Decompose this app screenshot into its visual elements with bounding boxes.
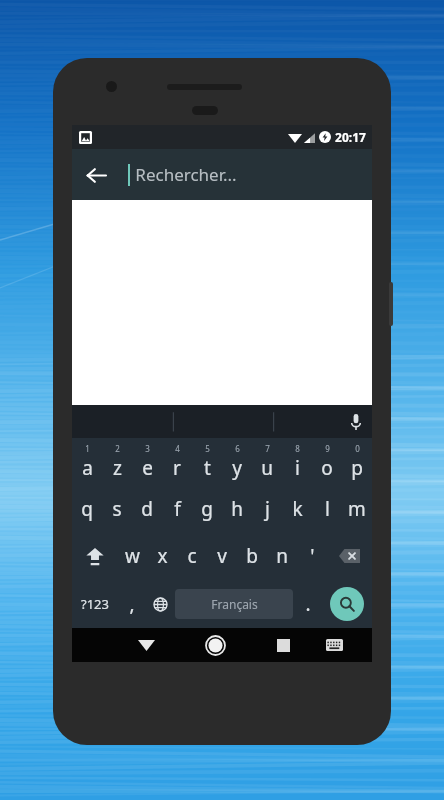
button[interactable]: Change language: [146, 580, 175, 628]
staticText: Rechercher...: [135, 163, 237, 186]
button[interactable]: f: [162, 485, 192, 532]
button[interactable]: s: [102, 485, 132, 532]
button[interactable]: 5: [192, 438, 222, 485]
staticText: Français: [211, 596, 258, 612]
button[interactable]: l: [312, 485, 342, 532]
button[interactable]: Backspace: [327, 532, 372, 580]
staticText: ?123: [81, 595, 109, 613]
button[interactable]: Rechercher...: [128, 149, 372, 200]
button[interactable]: n: [267, 532, 297, 580]
staticText: f: [174, 496, 181, 522]
button[interactable]: Shift: [72, 532, 117, 580]
staticText: 4: [175, 443, 180, 454]
staticText: j: [265, 496, 270, 522]
button[interactable]: x: [147, 532, 177, 580]
button[interactable]: 9: [312, 438, 342, 485]
staticText: x: [157, 543, 168, 569]
button[interactable]: Français: [175, 589, 293, 619]
staticText: 20:17: [335, 129, 366, 145]
staticText: ': [310, 543, 315, 569]
staticText: v: [217, 543, 227, 569]
staticText: w: [125, 543, 140, 569]
staticText: c: [187, 543, 197, 569]
staticText: 8: [295, 443, 300, 454]
staticText: 3: [145, 443, 150, 454]
staticText: .: [305, 591, 311, 617]
staticText: 1: [85, 443, 90, 454]
button[interactable]: 0: [342, 438, 372, 485]
staticText: d: [141, 496, 153, 522]
button[interactable]: ?123: [72, 580, 117, 628]
staticText: a: [82, 455, 93, 481]
staticText: b: [246, 543, 258, 569]
button[interactable]: .: [293, 580, 322, 628]
staticText: o: [321, 455, 333, 481]
button[interactable]: b: [237, 532, 267, 580]
button[interactable]: w: [117, 532, 147, 580]
staticText: i: [295, 455, 300, 481]
button[interactable]: m: [342, 485, 372, 532]
button[interactable]: c: [177, 532, 207, 580]
staticText: 9: [325, 443, 330, 454]
button[interactable]: h: [222, 485, 252, 532]
button[interactable]: Back: [124, 628, 169, 662]
button[interactable]: Search: [322, 580, 372, 628]
button[interactable]: 2: [102, 438, 132, 485]
button[interactable]: v: [207, 532, 237, 580]
staticText: 5: [205, 443, 210, 454]
staticText: 0: [355, 443, 360, 454]
button[interactable]: ,: [117, 580, 146, 628]
button[interactable]: 3: [132, 438, 162, 485]
button[interactable]: Recent apps: [261, 628, 305, 662]
staticText: k: [292, 496, 303, 522]
staticText: n: [276, 543, 288, 569]
button[interactable]: 7: [252, 438, 282, 485]
staticText: p: [351, 455, 363, 481]
staticText: h: [231, 496, 243, 522]
staticText: 2: [115, 443, 120, 454]
button[interactable]: Back: [72, 151, 120, 199]
staticText: ,: [129, 591, 135, 617]
staticText: t: [204, 455, 211, 481]
button[interactable]: 8: [282, 438, 312, 485]
button[interactable]: Switch keyboard: [312, 628, 356, 662]
staticText: z: [113, 455, 122, 481]
button[interactable]: q: [72, 485, 102, 532]
staticText: q: [81, 496, 93, 522]
button[interactable]: d: [132, 485, 162, 532]
staticText: m: [348, 496, 366, 522]
staticText: y: [232, 455, 242, 481]
button[interactable]: j: [252, 485, 282, 532]
staticText: e: [142, 455, 153, 481]
button[interactable]: 4: [162, 438, 192, 485]
staticText: 7: [265, 443, 270, 454]
button[interactable]: 6: [222, 438, 252, 485]
button[interactable]: ': [297, 532, 327, 580]
staticText: r: [173, 455, 181, 481]
button[interactable]: g: [192, 485, 222, 532]
button[interactable]: 1: [72, 438, 102, 485]
staticText: s: [112, 496, 122, 522]
button[interactable]: k: [282, 485, 312, 532]
button[interactable]: Home: [193, 628, 237, 662]
staticText: u: [261, 455, 273, 481]
staticText: l: [325, 496, 330, 522]
staticText: g: [201, 496, 213, 522]
staticText: 6: [235, 443, 240, 454]
button[interactable]: Voice input: [339, 405, 372, 438]
